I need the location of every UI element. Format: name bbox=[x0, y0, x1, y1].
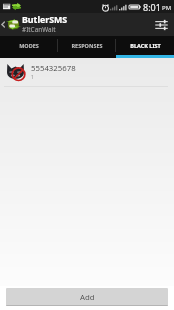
staticText: 5554325678 bbox=[31, 63, 76, 74]
staticText: #ItCanWait bbox=[22, 25, 56, 34]
button[interactable]: Add bbox=[6, 288, 168, 306]
button[interactable]: MODES bbox=[0, 36, 58, 55]
button[interactable]: 5554325678 bbox=[0, 58, 174, 86]
staticText: PM bbox=[162, 4, 172, 12]
staticText: 1 bbox=[31, 74, 34, 81]
staticText: ButlerSMS bbox=[22, 14, 68, 26]
staticText: BLACK LIST bbox=[130, 42, 161, 49]
button[interactable]: Navigate up bbox=[0, 17, 21, 32]
staticText: RESPONSES bbox=[71, 42, 103, 49]
staticText: 8:01 bbox=[143, 1, 161, 13]
button[interactable]: RESPONSES bbox=[58, 36, 116, 55]
button[interactable]: Settings bbox=[148, 13, 174, 36]
staticText: MODES bbox=[19, 42, 39, 49]
button[interactable]: BLACK LIST bbox=[116, 36, 174, 55]
staticText: Add bbox=[80, 292, 95, 303]
